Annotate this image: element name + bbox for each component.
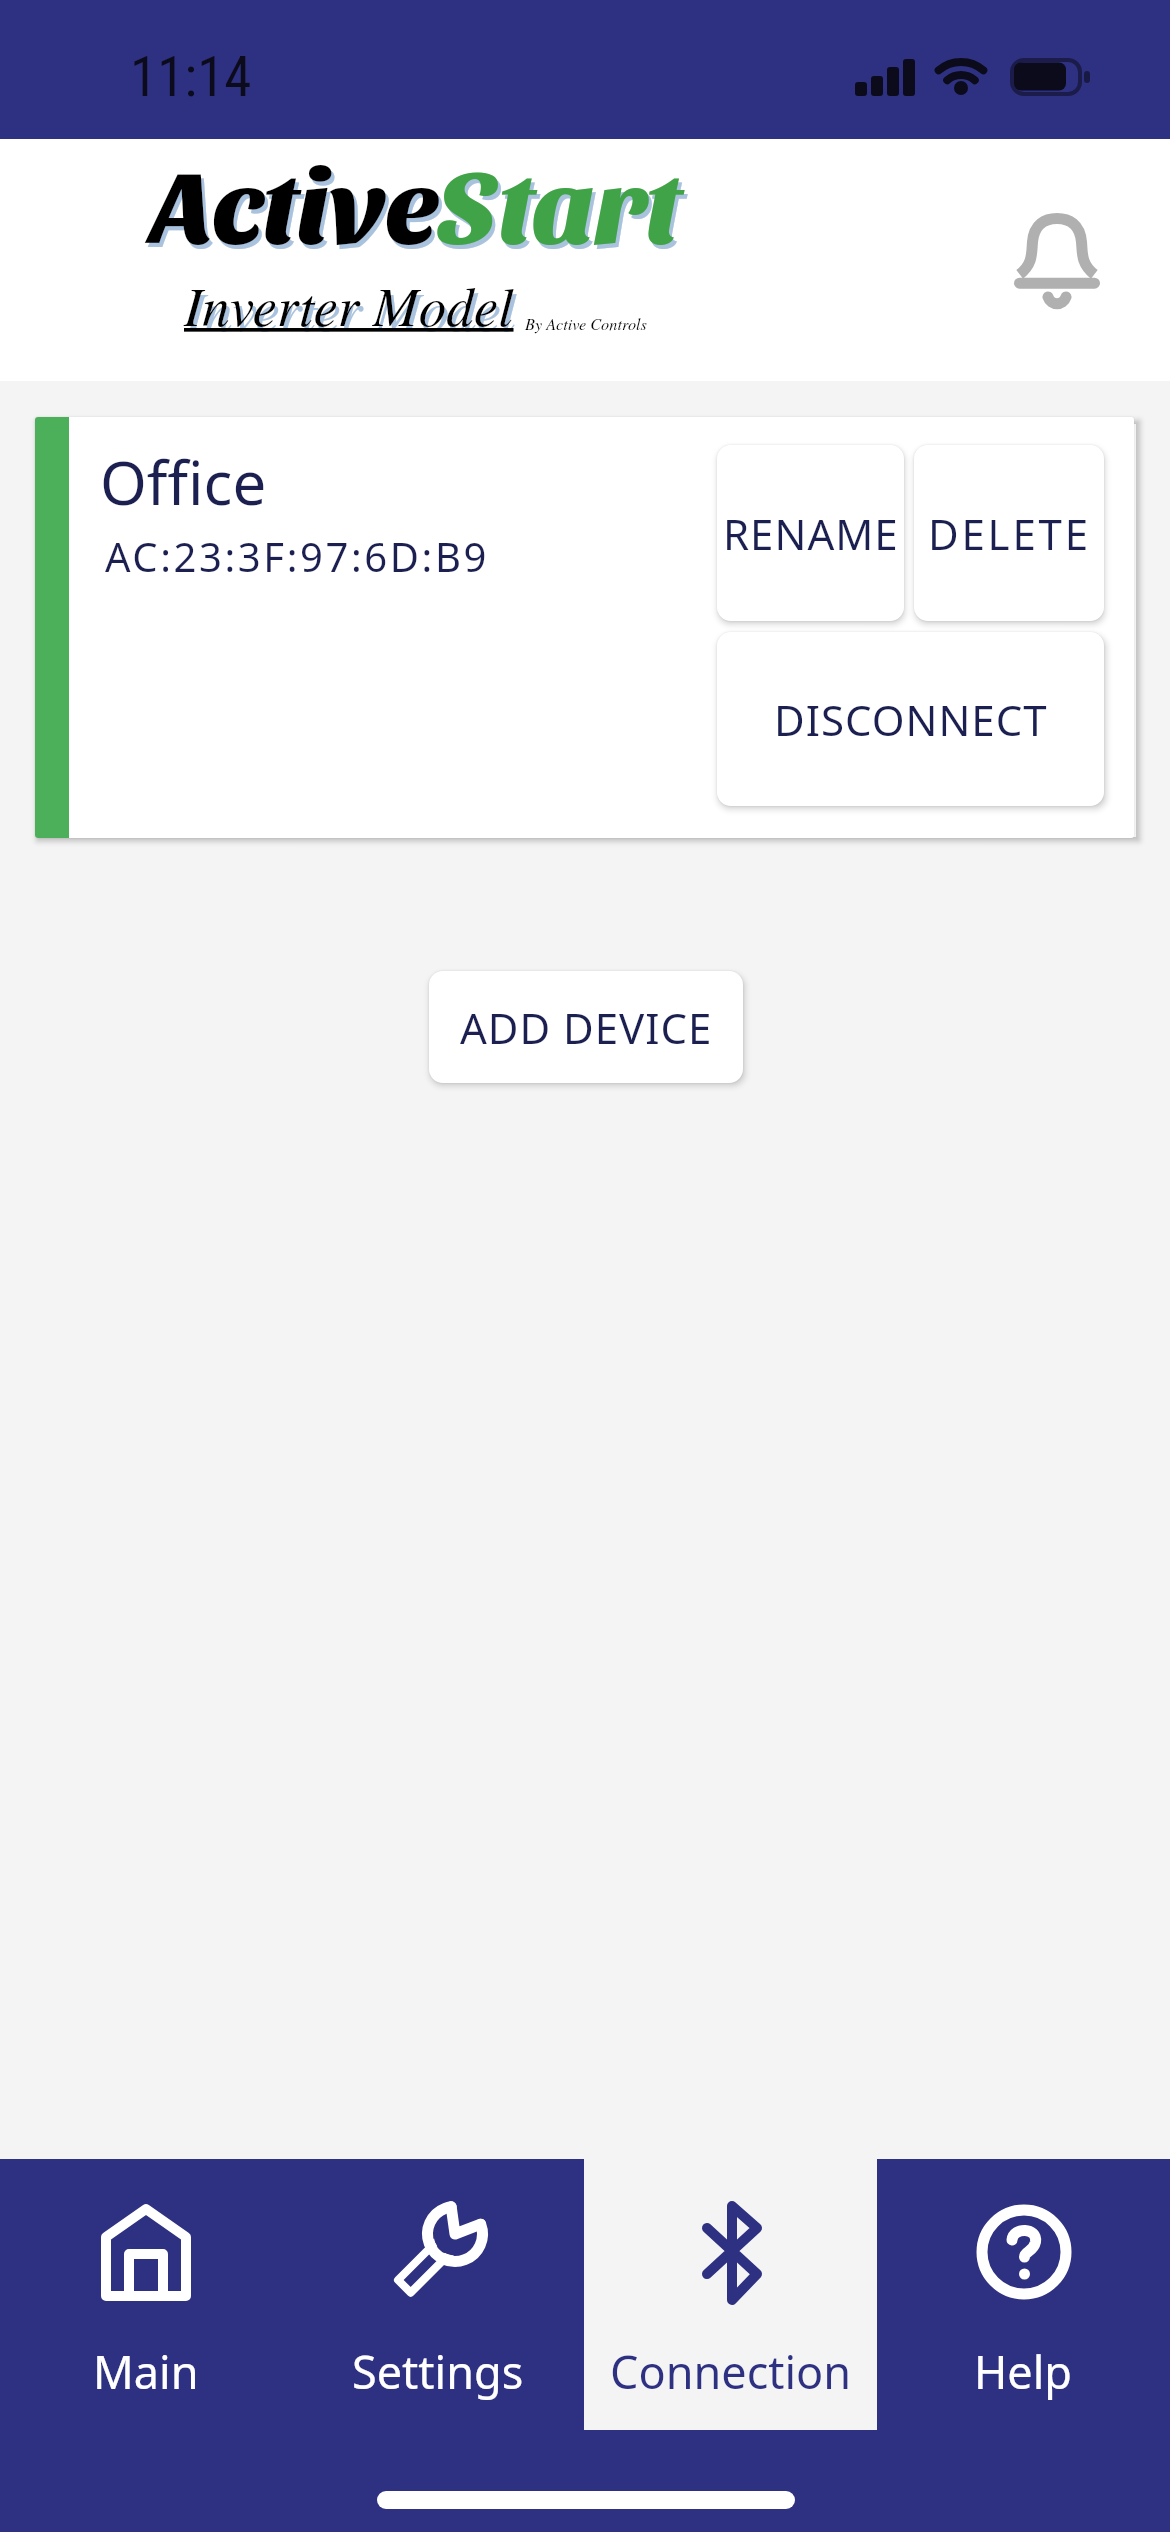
- button[interactable]: DELETE: [914, 445, 1104, 621]
- staticText: 11:14: [130, 45, 252, 109]
- staticText: Settings: [352, 2341, 524, 2402]
- staticText: By Active Controls: [525, 313, 647, 335]
- button[interactable]: Settings: [292, 2159, 584, 2430]
- button[interactable]: Main: [0, 2159, 292, 2430]
- button[interactable]: DISCONNECT: [717, 632, 1104, 806]
- staticText: Office: [100, 441, 267, 523]
- button[interactable]: Notifications: [985, 189, 1125, 319]
- button[interactable]: ADD DEVICE: [429, 971, 743, 1083]
- staticText: AC:23:3F:97:6D:B9: [105, 529, 489, 583]
- button[interactable]: RENAME: [717, 445, 904, 621]
- button[interactable]: Connection: [584, 2159, 877, 2430]
- staticText: ActiveStart: [151, 137, 680, 262]
- staticText: DELETE: [928, 505, 1091, 562]
- staticText: RENAME: [723, 505, 899, 562]
- staticText: Inverter Model: [184, 267, 514, 341]
- button[interactable]: Help: [877, 2159, 1170, 2430]
- staticText: ADD DEVICE: [460, 999, 713, 1056]
- staticText: DISCONNECT: [774, 691, 1048, 748]
- staticText: Connection: [610, 2341, 852, 2402]
- staticText: Main: [93, 2341, 199, 2402]
- staticText: Help: [974, 2341, 1073, 2402]
